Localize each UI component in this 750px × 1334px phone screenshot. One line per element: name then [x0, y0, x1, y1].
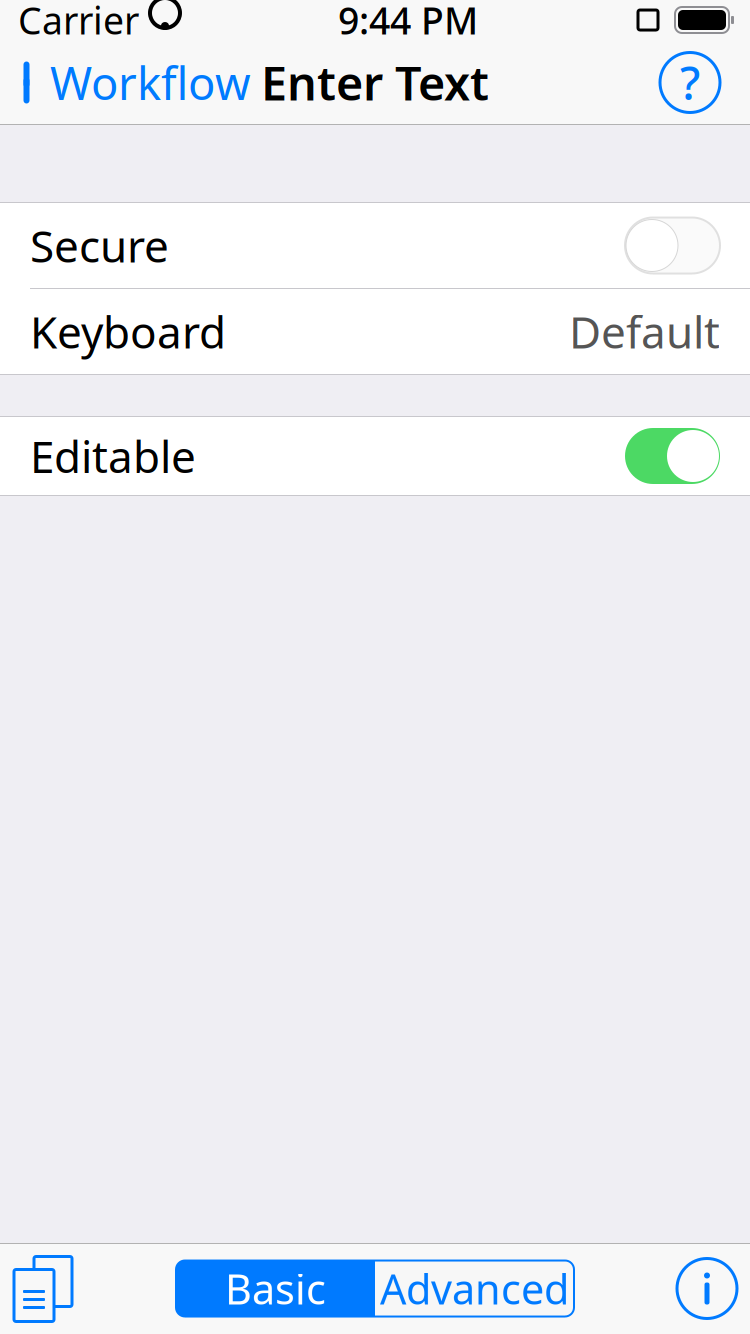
button[interactable]: Secure: [0, 203, 750, 288]
staticText: Basic: [225, 1261, 326, 1316]
button[interactable]: Workflow: [0, 42, 251, 123]
staticText: 9:44 PM: [338, 0, 478, 45]
staticText: Default: [569, 302, 720, 361]
staticText: Secure: [30, 216, 169, 275]
button[interactable]: Editable: [0, 417, 750, 495]
button[interactable]: Basic: [176, 1260, 375, 1316]
button[interactable]: Help: [660, 52, 720, 112]
staticText: ?: [680, 52, 700, 113]
staticText: Enter Text: [261, 51, 489, 113]
staticText: Editable: [30, 427, 196, 485]
staticText: Keyboard: [30, 302, 226, 361]
staticText: Advanced: [380, 1261, 569, 1316]
button[interactable]: Documents: [0, 1243, 86, 1334]
button[interactable]: Info: [664, 1243, 750, 1334]
button[interactable]: Keyboard: [0, 289, 750, 374]
staticText: Workflow: [50, 52, 251, 113]
staticText: Carrier: [18, 0, 139, 45]
button[interactable]: Advanced: [375, 1260, 574, 1316]
